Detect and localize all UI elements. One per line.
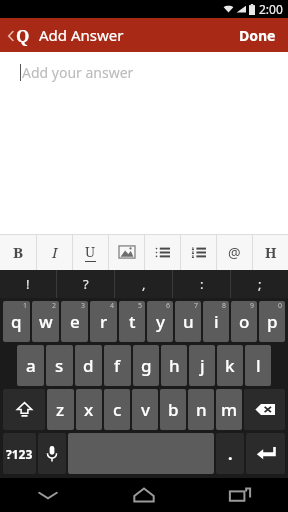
staticText: c bbox=[113, 398, 122, 421]
button[interactable]: Numbered list bbox=[181, 234, 216, 270]
staticText: Add Answer bbox=[39, 25, 124, 45]
staticText: e bbox=[70, 310, 80, 333]
button[interactable]: c bbox=[104, 389, 130, 430]
staticText: a bbox=[26, 354, 36, 377]
button[interactable]: ! bbox=[0, 270, 56, 298]
button[interactable]: h bbox=[161, 345, 187, 386]
staticText: w bbox=[39, 310, 53, 333]
staticText: @ bbox=[228, 243, 241, 262]
staticText: ! bbox=[26, 275, 30, 293]
button[interactable]: v bbox=[132, 389, 158, 430]
button[interactable]: ? bbox=[57, 270, 114, 298]
staticText: 0 bbox=[278, 301, 283, 311]
staticText: 8 bbox=[222, 301, 227, 311]
staticText: y bbox=[156, 310, 165, 333]
button[interactable]: ?123 bbox=[3, 433, 36, 474]
button[interactable]: Back to Quora bbox=[5, 20, 32, 51]
button[interactable]: t bbox=[119, 301, 145, 342]
button[interactable]: , bbox=[115, 270, 172, 298]
staticText: o bbox=[239, 310, 250, 333]
button[interactable]: y bbox=[147, 301, 173, 342]
button[interactable]: Heading bbox=[253, 234, 288, 270]
staticText: B bbox=[13, 242, 24, 262]
staticText: l bbox=[256, 354, 261, 377]
staticText: , bbox=[142, 275, 146, 293]
button[interactable]: Bold bbox=[0, 234, 36, 270]
button[interactable]: Home bbox=[96, 478, 192, 512]
button[interactable]: Voice input bbox=[38, 433, 66, 474]
staticText: 3 bbox=[81, 301, 86, 311]
button[interactable]: m bbox=[216, 389, 242, 430]
button[interactable]: : bbox=[173, 270, 230, 298]
staticText: : bbox=[200, 275, 204, 293]
button[interactable]: e bbox=[61, 301, 88, 342]
staticText: s bbox=[55, 354, 64, 377]
button[interactable]: Enter bbox=[246, 433, 285, 474]
button[interactable]: x bbox=[76, 389, 102, 430]
button[interactable]: . bbox=[216, 433, 244, 474]
button[interactable]: ; bbox=[231, 270, 288, 298]
button[interactable]: d bbox=[75, 345, 102, 386]
staticText: d bbox=[83, 354, 94, 377]
button[interactable]: j bbox=[189, 345, 215, 386]
staticText: . bbox=[228, 443, 233, 465]
button[interactable]: Mention bbox=[217, 234, 252, 270]
staticText: p bbox=[267, 310, 278, 333]
staticText: ? bbox=[83, 275, 89, 293]
staticText: Q bbox=[16, 24, 30, 47]
staticText: v bbox=[141, 398, 150, 421]
staticText: 6 bbox=[166, 301, 171, 311]
button[interactable]: r bbox=[90, 301, 117, 342]
button[interactable]: p bbox=[259, 301, 285, 342]
staticText: 9 bbox=[250, 301, 255, 311]
button[interactable]: Recent apps bbox=[192, 478, 288, 512]
staticText: g bbox=[141, 354, 152, 377]
button[interactable]: w bbox=[32, 301, 59, 342]
button[interactable]: f bbox=[104, 345, 131, 386]
button[interactable]: Bulleted list bbox=[145, 234, 180, 270]
staticText: b bbox=[168, 398, 179, 421]
staticText: Done bbox=[239, 26, 276, 45]
button[interactable]: q bbox=[3, 301, 30, 342]
button[interactable]: Hide keyboard bbox=[0, 478, 96, 512]
button[interactable]: b bbox=[160, 389, 186, 430]
staticText: f bbox=[114, 354, 121, 377]
staticText: ; bbox=[258, 275, 262, 293]
staticText: q bbox=[11, 310, 22, 333]
button[interactable]: Italic bbox=[37, 234, 72, 270]
staticText: r bbox=[100, 310, 108, 333]
button[interactable]: Done bbox=[235, 20, 280, 51]
staticText: I bbox=[52, 242, 58, 262]
button[interactable]: Insert image bbox=[109, 234, 144, 270]
button[interactable]: u bbox=[175, 301, 201, 342]
staticText: j bbox=[200, 354, 205, 377]
staticText: t bbox=[129, 310, 136, 333]
button[interactable]: l bbox=[245, 345, 271, 386]
button[interactable]: Backspace bbox=[244, 389, 285, 430]
staticText: n bbox=[196, 398, 207, 421]
staticText: u bbox=[183, 310, 194, 333]
staticText: 5 bbox=[138, 301, 143, 311]
button[interactable]: g bbox=[133, 345, 159, 386]
button[interactable]: k bbox=[217, 345, 243, 386]
button[interactable]: s bbox=[46, 345, 73, 386]
button[interactable]: o bbox=[231, 301, 257, 342]
staticText: m bbox=[221, 398, 238, 421]
staticText: H bbox=[265, 243, 277, 262]
button[interactable]: n bbox=[188, 389, 214, 430]
staticText: 2 bbox=[52, 301, 57, 311]
staticText: i bbox=[214, 310, 219, 333]
button[interactable]: z bbox=[47, 389, 74, 430]
button[interactable]: Underline bbox=[73, 234, 108, 270]
staticText: z bbox=[56, 398, 65, 421]
staticText: U bbox=[85, 242, 96, 261]
staticText: 1 bbox=[23, 301, 28, 311]
button[interactable]: Shift bbox=[3, 389, 45, 430]
button[interactable]: i bbox=[203, 301, 229, 342]
staticText: 4 bbox=[110, 301, 115, 311]
staticText: ?123 bbox=[6, 446, 33, 462]
button[interactable]: Add your answer bbox=[0, 52, 288, 92]
staticText: 7 bbox=[194, 301, 199, 311]
button[interactable]: a bbox=[17, 345, 44, 386]
